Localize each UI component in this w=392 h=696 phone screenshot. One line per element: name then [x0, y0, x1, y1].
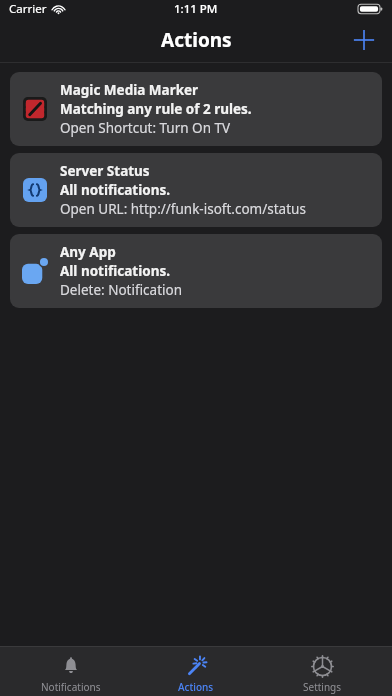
staticText: Open URL: http://funk-isoft.com/status — [60, 200, 306, 218]
button[interactable]: Add action — [344, 20, 384, 60]
staticText: Carrier — [9, 1, 47, 17]
staticText: Actions — [161, 27, 232, 53]
staticText: Actions — [178, 680, 214, 694]
staticText: Delete: Notification — [60, 281, 183, 299]
button[interactable]: Magic Media Marker — [10, 72, 382, 146]
button[interactable]: Server Status — [10, 153, 382, 227]
staticText: 1:11 PM — [174, 1, 218, 17]
staticText: All notifications. — [60, 181, 170, 199]
staticText: Notifications — [41, 680, 101, 694]
button[interactable]: Actions — [141, 650, 251, 694]
staticText: Matching any rule of 2 rules. — [60, 100, 252, 118]
staticText: Magic Media Marker — [60, 81, 199, 99]
staticText: All notifications. — [60, 262, 170, 280]
button[interactable]: Notifications — [16, 650, 126, 694]
button[interactable]: Any App — [10, 234, 382, 308]
staticText: Any App — [60, 243, 116, 261]
staticText: Server Status — [60, 162, 150, 180]
button[interactable]: Settings — [267, 650, 377, 694]
staticText: Settings — [303, 680, 342, 694]
staticText: Open Shortcut: Turn On TV — [60, 119, 231, 137]
